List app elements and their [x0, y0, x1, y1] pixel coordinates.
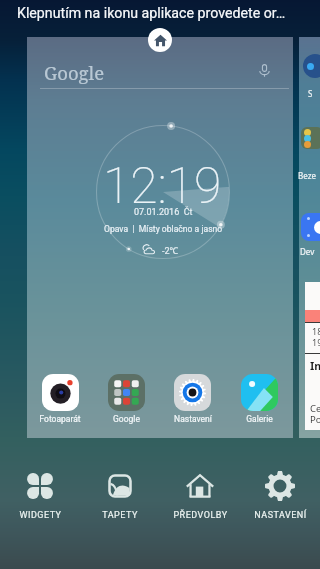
- staticText: 18: [312, 325, 320, 337]
- staticText: Po: [310, 413, 320, 426]
- button[interactable]: Home: [148, 28, 172, 52]
- button[interactable]: Nastavení: [159, 374, 226, 424]
- staticText: TAPETY: [102, 510, 138, 521]
- staticText: -2℃: [162, 244, 179, 256]
- staticText: Ce: [310, 402, 320, 415]
- button[interactable]: WIDGETY: [0, 465, 80, 525]
- staticText: Galerie: [246, 414, 273, 424]
- button[interactable]: S: [299, 37, 320, 438]
- staticText: 19: [312, 336, 320, 348]
- staticText: Opava | Místy oblačno a jasno: [104, 224, 223, 234]
- staticText: PŘEDVOLBY: [173, 510, 228, 521]
- staticText: Fotoaparát: [39, 414, 81, 424]
- staticText: Dev: [300, 246, 315, 257]
- staticText: 07.01.2016 Čt: [134, 207, 193, 218]
- button[interactable]: TAPETY: [80, 465, 160, 525]
- staticText: Google: [113, 414, 140, 424]
- staticText: Beze: [298, 170, 316, 181]
- staticText: WIDGETY: [19, 510, 62, 521]
- button[interactable]: Galerie: [226, 374, 293, 424]
- staticText: 12:19: [103, 157, 222, 216]
- staticText: Google: [44, 60, 105, 85]
- staticText: NASTAVENÍ: [254, 510, 307, 521]
- staticText: Nastavení: [174, 414, 212, 424]
- button[interactable]: NASTAVENÍ: [240, 465, 320, 525]
- staticText: S: [308, 88, 313, 99]
- button[interactable]: Fotoaparát: [27, 374, 93, 424]
- button[interactable]: PŘEDVOLBY: [160, 465, 240, 525]
- button[interactable]: Google: [27, 37, 293, 438]
- staticText: Im: [310, 358, 320, 373]
- button[interactable]: Google: [93, 374, 159, 424]
- staticText: Klepnutím na ikonu aplikace provedete or…: [17, 5, 286, 22]
